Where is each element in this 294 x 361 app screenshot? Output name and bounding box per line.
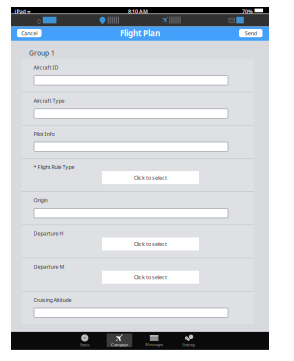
button[interactable]: Click to select: [102, 271, 199, 284]
button[interactable]: Messages: [141, 333, 167, 347]
button[interactable]: Click to select: [102, 171, 199, 184]
staticText: 8:10 AM: [128, 8, 148, 15]
staticText: Click to select: [134, 274, 167, 281]
staticText: Flight Plan: [120, 28, 160, 38]
staticText: Click to select: [134, 174, 167, 181]
staticText: Pilot Info: [33, 130, 54, 137]
staticText: * Flight Rule Type: [33, 163, 74, 171]
staticText: Cruising Altitude: [33, 296, 71, 303]
staticText: Group 1: [29, 48, 55, 57]
staticText: Origin: [33, 197, 47, 204]
button[interactable]: Click to select: [102, 237, 199, 250]
staticText: Departure H: [33, 230, 63, 237]
button[interactable]: Send: [239, 29, 262, 37]
staticText: Departure M: [33, 263, 64, 270]
staticText: Status: [80, 342, 90, 347]
staticText: Send: [245, 29, 257, 37]
staticText: iPad: [14, 8, 25, 15]
button[interactable]: Settings: [176, 333, 202, 347]
staticText: 0: [37, 17, 41, 26]
button[interactable]: Cancel: [17, 29, 41, 37]
staticText: Settings: [182, 342, 195, 347]
staticText: Cancel: [21, 29, 37, 37]
button[interactable]: Compose: [107, 333, 132, 347]
staticText: Click to select: [134, 240, 167, 247]
staticText: Aircraft ID: [33, 64, 58, 71]
staticText: Aircraft Type: [33, 97, 64, 104]
button[interactable]: Status: [72, 333, 97, 347]
staticText: Messages: [145, 342, 163, 347]
staticText: 70%: [242, 8, 253, 15]
staticText: Compose: [111, 342, 128, 347]
